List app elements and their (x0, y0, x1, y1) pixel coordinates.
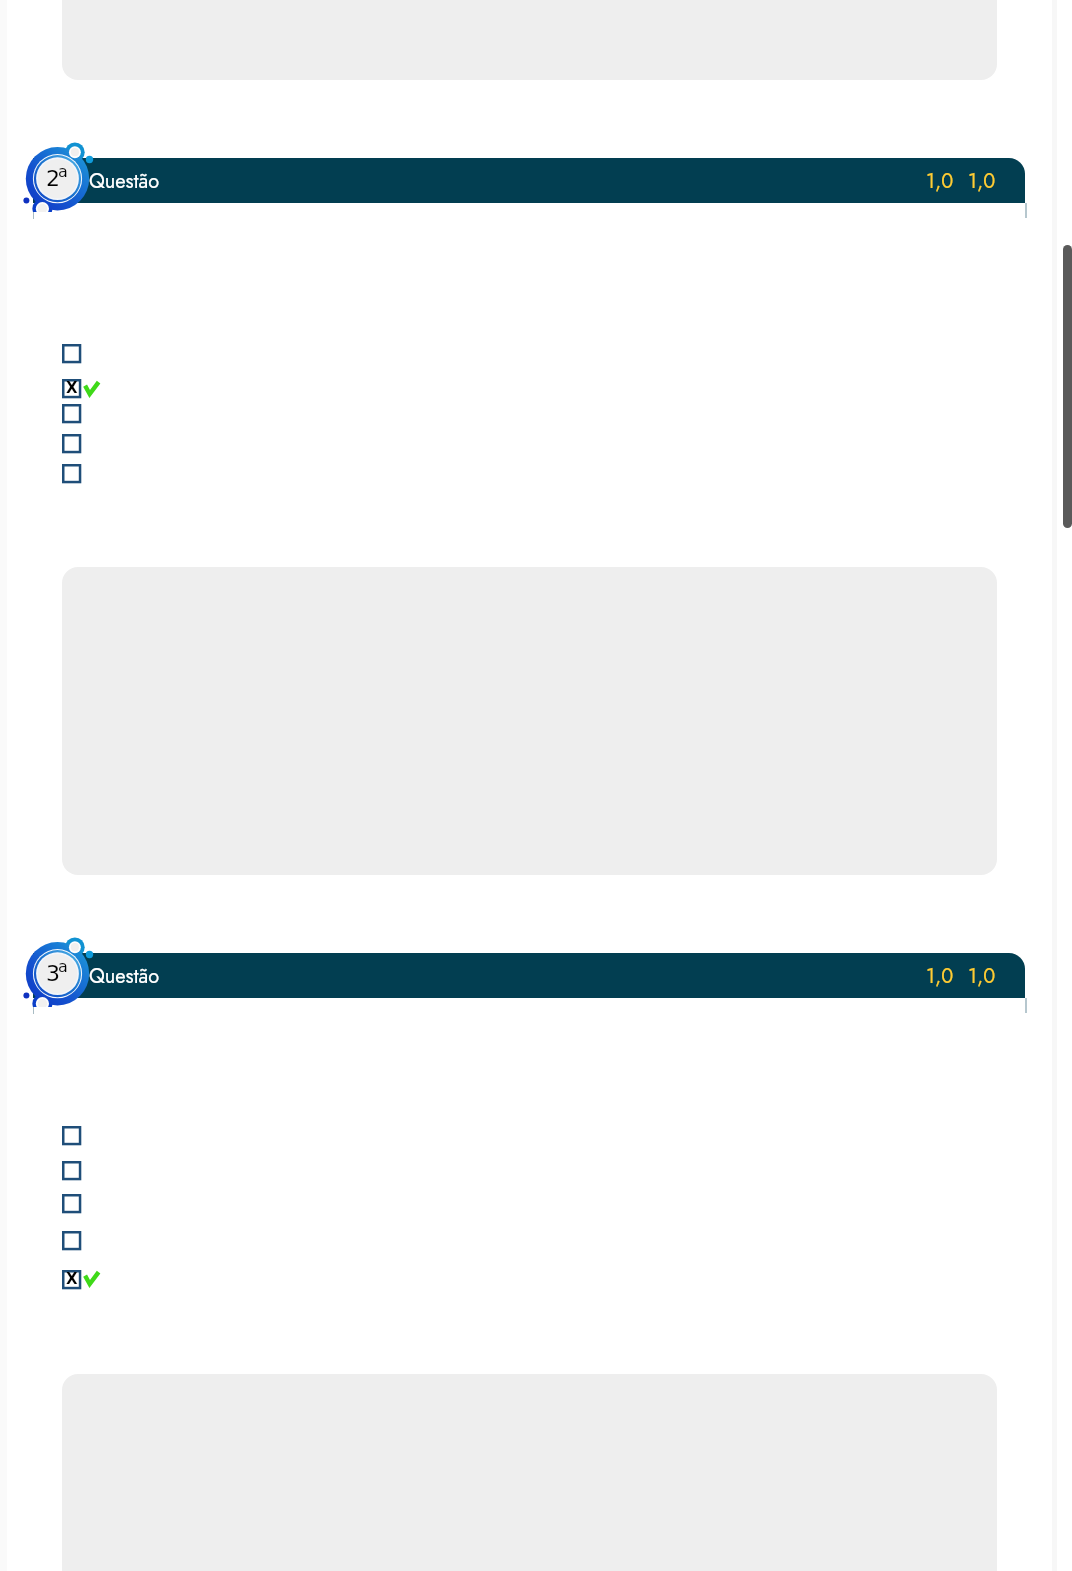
button[interactable]: Option (62, 1126, 81, 1145)
button[interactable]: Questão (33, 158, 1025, 203)
staticText: Questão (89, 962, 160, 991)
button[interactable]: Questão 3 (23, 924, 119, 1007)
staticText: a (58, 162, 68, 181)
button[interactable]: Questão (33, 953, 1025, 998)
staticText: X (66, 379, 78, 396)
button[interactable]: Option (62, 1231, 81, 1250)
staticText: 1,0 (968, 962, 996, 991)
staticText: 1,0 (926, 962, 954, 991)
staticText: Questão (89, 167, 160, 196)
button[interactable]: Option (62, 1161, 81, 1180)
staticText: 1,0 (968, 167, 996, 196)
staticText: 1,0 (926, 167, 954, 196)
button[interactable]: Questão 2 (23, 129, 119, 212)
button[interactable]: Option (62, 1194, 81, 1213)
staticText: 3 (46, 961, 60, 987)
staticText: X (66, 1270, 78, 1287)
button[interactable]: Option (62, 464, 81, 483)
button[interactable]: Option (62, 404, 81, 423)
button[interactable]: Selected option (62, 379, 81, 398)
button[interactable]: Option (62, 344, 81, 363)
staticText: a (58, 957, 68, 976)
staticText: 2 (46, 166, 60, 192)
button[interactable]: Selected option (62, 1270, 81, 1289)
button[interactable]: Option (62, 434, 81, 453)
